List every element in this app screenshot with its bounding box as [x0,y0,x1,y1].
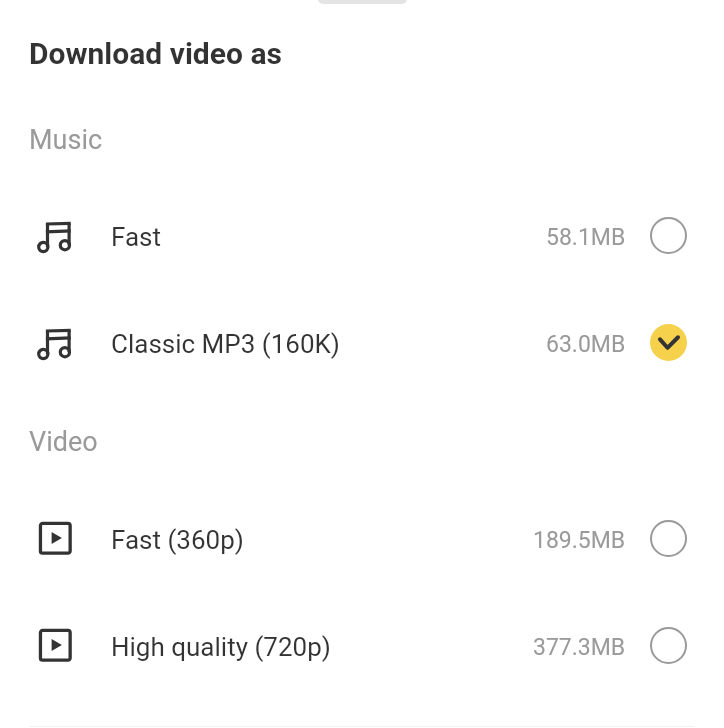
staticText: 377.3MB [533,634,626,661]
other: Not selected [649,519,687,557]
staticText: 58.1MB [546,224,626,251]
button[interactable]: Audio [0,183,724,287]
staticText: Video [29,426,98,458]
staticText: 63.0MB [546,331,626,358]
button[interactable]: Drag handle [318,0,407,4]
button[interactable]: Video [0,486,724,590]
staticText: 189.5MB [533,527,626,554]
other: Not selected [649,626,687,664]
button[interactable]: Audio [0,290,724,394]
other: Audio [37,221,71,255]
other: Selected [649,323,687,361]
staticText: Classic MP3 (160K) [111,329,340,359]
other: Audio [37,328,71,362]
staticText: High quality (720p) [111,632,331,662]
staticText: Fast (360p) [111,525,244,555]
other: Video [37,520,71,554]
staticText: Music [29,124,103,156]
other: Not selected [649,216,687,254]
other: Video [37,627,71,661]
staticText: Fast [111,222,162,252]
button[interactable]: Video [0,593,724,697]
staticText: Download video as [29,36,282,71]
